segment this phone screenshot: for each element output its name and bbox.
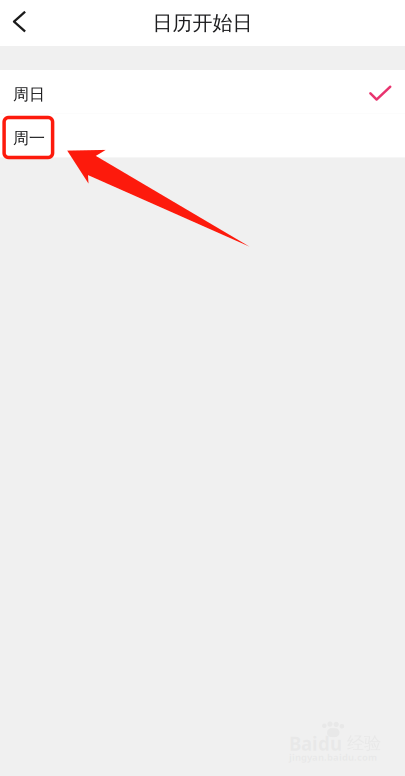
button[interactable]: Back [0,0,40,46]
staticText: 日历开始日 [152,11,252,35]
button[interactable]: 周一 [0,114,405,157]
button[interactable]: 周日 [0,70,405,114]
staticText: 周一 [13,128,45,148]
staticText: 周日 [13,84,45,104]
staticText: Baidu [289,731,342,756]
